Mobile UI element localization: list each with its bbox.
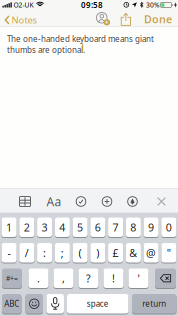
staticText: #+=	[6, 274, 18, 283]
staticText: 1	[6, 220, 12, 234]
button[interactable]: return	[132, 294, 176, 314]
staticText: )	[96, 246, 99, 260]
staticText: +	[105, 18, 109, 27]
staticText: .	[37, 271, 40, 285]
staticText: 30%	[146, 1, 160, 9]
button[interactable]: 9	[144, 217, 159, 238]
staticText: Aa	[46, 193, 61, 209]
staticText: 0	[166, 220, 172, 234]
staticText: 09:58	[81, 0, 103, 10]
staticText: Done	[144, 12, 172, 26]
button[interactable]: Formatting	[46, 194, 62, 208]
button[interactable]: 6	[90, 217, 105, 238]
button[interactable]: Share	[119, 12, 133, 27]
staticText: 9	[148, 220, 154, 234]
button[interactable]: !	[103, 268, 123, 289]
staticText: 6	[95, 220, 101, 234]
staticText: 4	[59, 220, 65, 234]
staticText: ;	[61, 246, 64, 260]
button[interactable]: ,	[53, 268, 73, 289]
button[interactable]: Insert Photo	[100, 194, 114, 208]
button[interactable]: (	[73, 243, 88, 263]
staticText: The one-handed keyboard means giant	[7, 33, 154, 44]
staticText: !	[112, 271, 115, 285]
staticText: @	[146, 246, 156, 260]
button[interactable]: Notes	[4, 13, 36, 27]
staticText: :	[43, 246, 46, 260]
staticText: 2	[24, 220, 30, 234]
button[interactable]: Checklist	[74, 194, 88, 208]
button[interactable]: @	[144, 243, 159, 263]
button[interactable]: 2	[19, 217, 34, 238]
button[interactable]: .	[28, 268, 48, 289]
button[interactable]: Markup	[125, 194, 139, 208]
staticText: 7	[113, 220, 119, 234]
staticText: (	[79, 246, 82, 260]
button[interactable]: space	[67, 294, 128, 314]
staticText: 3	[42, 220, 48, 234]
button[interactable]: 7	[108, 217, 123, 238]
button[interactable]: &	[126, 243, 141, 263]
button[interactable]: 5	[73, 217, 88, 238]
button[interactable]: Dictate	[46, 294, 64, 314]
staticText: 8	[130, 220, 136, 234]
staticText: -	[8, 246, 11, 260]
button[interactable]: 0	[161, 217, 176, 238]
button[interactable]: -	[2, 243, 17, 263]
staticText: 5	[77, 220, 83, 234]
button[interactable]: ?	[78, 268, 98, 289]
button[interactable]: )	[90, 243, 105, 263]
staticText: &	[129, 246, 137, 260]
staticText: /	[25, 246, 29, 260]
button[interactable]: ABC	[2, 294, 21, 314]
button[interactable]: Done	[144, 12, 172, 26]
button[interactable]: ;	[55, 243, 70, 263]
staticText: space	[87, 298, 109, 309]
button[interactable]: 4	[55, 217, 70, 238]
staticText: £	[113, 246, 119, 260]
staticText: thumbs are optional.	[7, 44, 85, 55]
staticText: return	[142, 298, 166, 309]
staticText: Notes	[11, 14, 36, 26]
button[interactable]: Add People	[96, 11, 111, 27]
button[interactable]: #+=	[2, 268, 22, 289]
button[interactable]: 1	[2, 217, 17, 238]
staticText: O2-UK	[13, 1, 33, 9]
button[interactable]: £	[108, 243, 123, 263]
button[interactable]: Delete	[155, 268, 176, 289]
button[interactable]: '	[128, 268, 148, 289]
staticText: ,	[62, 271, 65, 285]
staticText: '	[137, 271, 139, 285]
button[interactable]: 3	[37, 217, 52, 238]
button[interactable]: /	[19, 243, 34, 263]
button[interactable]: "	[161, 243, 176, 263]
staticText: ABC	[4, 298, 19, 309]
button[interactable]: 8	[126, 217, 141, 238]
staticText: "	[167, 246, 171, 260]
button[interactable]: Insert Table	[18, 194, 32, 208]
button[interactable]: Emoji	[25, 294, 43, 314]
button[interactable]: Dismiss	[154, 194, 168, 208]
button[interactable]: :	[37, 243, 52, 263]
staticText: ?	[86, 271, 91, 285]
